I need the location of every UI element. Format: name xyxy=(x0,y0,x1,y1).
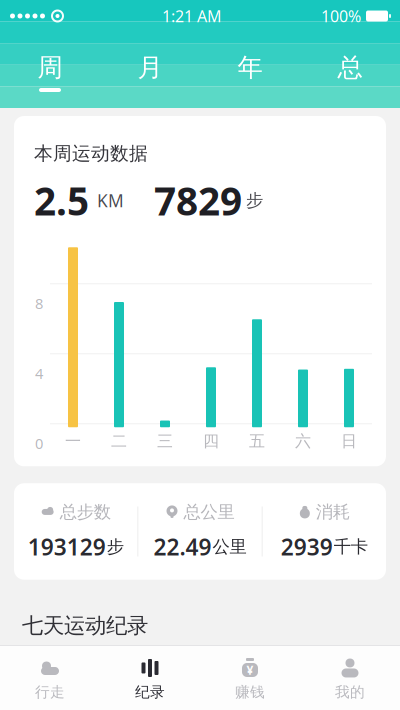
button[interactable]: 月 xyxy=(100,50,200,94)
staticText: 我的 xyxy=(335,683,365,701)
staticText: 消耗 xyxy=(316,501,350,523)
staticText: 总步数 xyxy=(60,501,111,523)
button[interactable]: 我的 xyxy=(300,654,400,704)
staticText: 8 xyxy=(35,293,43,313)
staticText: 六 xyxy=(295,431,311,451)
staticText: 100% xyxy=(321,5,361,27)
staticText: 千卡 xyxy=(334,536,368,557)
staticText: 本周运动数据 xyxy=(34,142,148,165)
staticText: 2.5 xyxy=(34,175,89,226)
staticText: ¥ xyxy=(246,662,253,678)
button[interactable]: 总 xyxy=(300,50,400,94)
staticText: 2939 xyxy=(281,532,333,562)
staticText: 7829 xyxy=(154,175,242,226)
button[interactable]: 年 xyxy=(200,50,300,94)
staticText: 纪录 xyxy=(135,683,165,701)
staticText: 总 xyxy=(337,52,362,83)
button[interactable]: 纪录 xyxy=(100,654,200,704)
staticText: 0 xyxy=(35,433,43,453)
staticText: 五 xyxy=(249,431,265,451)
staticText: 步 xyxy=(246,190,263,211)
staticText: 日 xyxy=(341,431,357,451)
staticText: 一 xyxy=(65,431,81,451)
button[interactable]: 行走 xyxy=(0,654,100,704)
staticText: 二 xyxy=(111,431,127,451)
staticText: 193129 xyxy=(28,532,106,562)
staticText: 公里 xyxy=(212,536,246,557)
staticText: 四 xyxy=(203,431,219,451)
staticText: 赚钱 xyxy=(235,683,265,701)
staticText: 步 xyxy=(107,536,124,557)
staticText: 三 xyxy=(157,431,173,451)
staticText: 总公里 xyxy=(183,501,234,523)
staticText: 年 xyxy=(237,52,262,83)
button[interactable]: 周 xyxy=(0,50,100,94)
staticText: 1:21 AM xyxy=(162,5,222,27)
staticText: 七天运动纪录 xyxy=(22,613,148,639)
staticText: 4 xyxy=(35,363,43,383)
staticText: 行走 xyxy=(35,683,65,701)
staticText: 月 xyxy=(137,52,162,83)
staticText: KM xyxy=(92,189,124,212)
button[interactable]: ¥ xyxy=(200,654,300,704)
staticText: 22.49 xyxy=(153,532,211,562)
staticText: 周 xyxy=(37,52,62,83)
